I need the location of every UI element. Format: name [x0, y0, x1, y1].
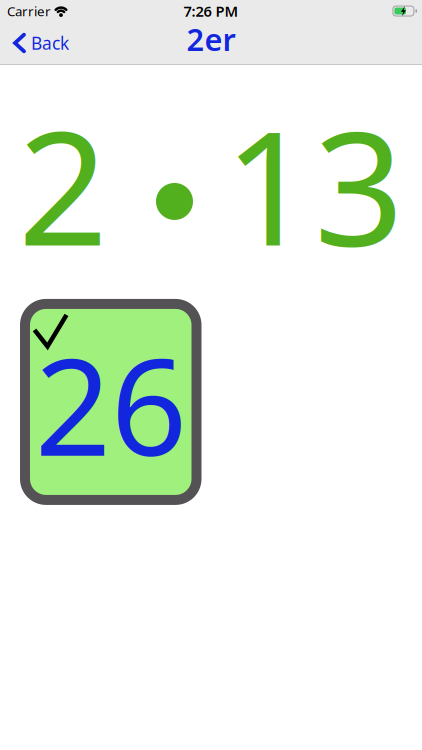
staticText: 2 [18, 80, 108, 289]
staticText: 13 [224, 80, 404, 289]
staticText: 7:26 PM [183, 1, 238, 21]
staticText: Carrier [7, 2, 51, 20]
button[interactable]: Back [0, 31, 69, 54]
button[interactable]: 26 [20, 299, 201, 505]
staticText: Back [31, 31, 69, 54]
staticText: 2er [186, 19, 235, 59]
staticText: 26 [35, 315, 187, 492]
